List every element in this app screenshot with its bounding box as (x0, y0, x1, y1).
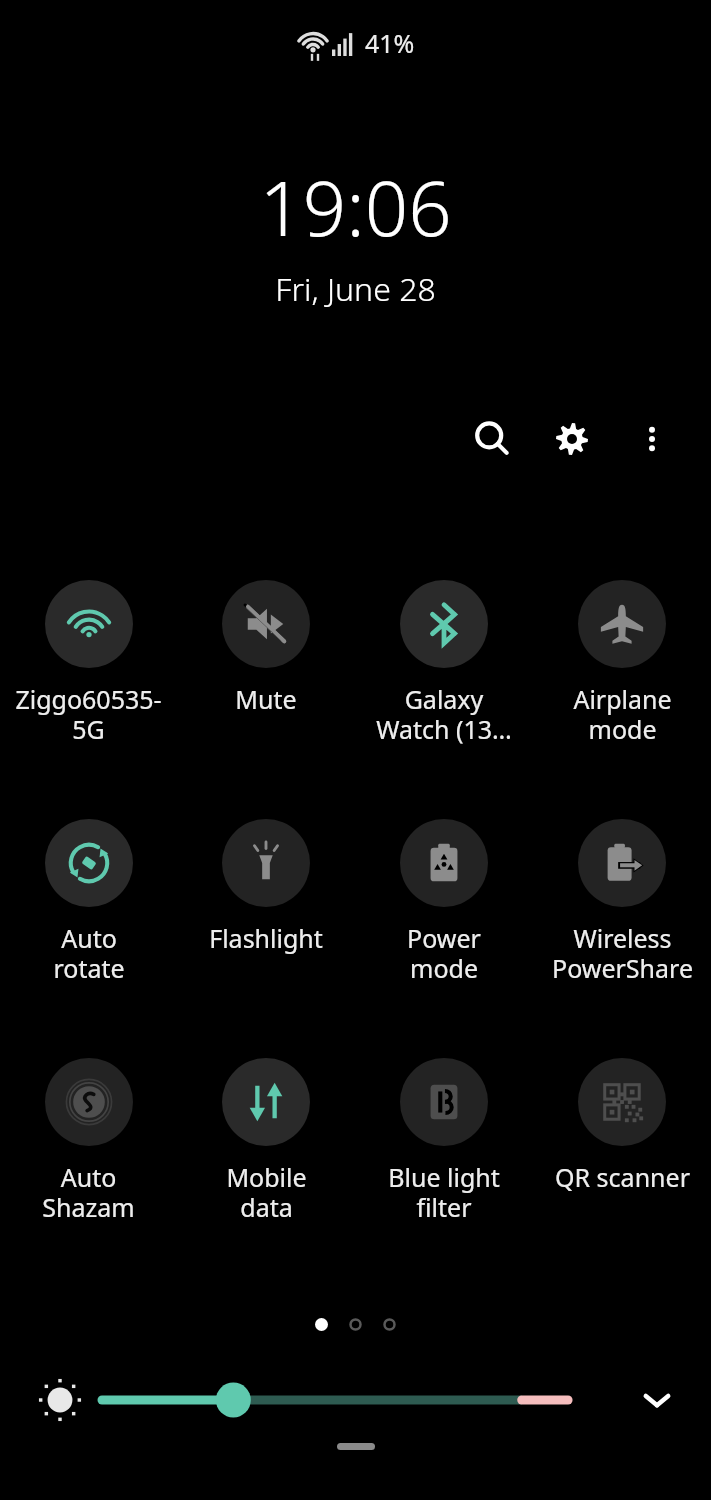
button[interactable]: Brightness slider (102, 1371, 617, 1429)
button[interactable]: Mobile data (177, 1058, 355, 1225)
staticText: Flashlight (209, 921, 323, 955)
staticText: Blue light filter (388, 1160, 500, 1225)
staticText: 41% (365, 26, 415, 60)
staticText: Auto rotate (53, 921, 125, 986)
staticText: Wireless PowerShare (552, 921, 693, 986)
button[interactable]: Auto rotate (0, 819, 177, 986)
button[interactable]: Mute (177, 580, 355, 716)
button[interactable]: Expand (625, 1368, 689, 1432)
button[interactable]: Settings (543, 410, 601, 468)
staticText: Power mode (407, 921, 481, 986)
button[interactable]: Wireless PowerShare (533, 819, 711, 986)
button[interactable]: Brightness (32, 1372, 88, 1428)
button[interactable]: Flashlight (177, 819, 355, 955)
staticText: 19:06 (259, 155, 452, 259)
staticText: Airplane mode (573, 682, 672, 747)
staticText: Mute (235, 682, 297, 716)
button[interactable]: Airplane mode (533, 580, 711, 747)
button[interactable]: Blue light filter (355, 1058, 533, 1225)
button[interactable]: Search (463, 410, 521, 468)
button[interactable]: Galaxy Watch (13… (355, 580, 533, 747)
button[interactable]: Power mode (355, 819, 533, 986)
button[interactable]: More options (623, 410, 681, 468)
button[interactable]: Auto Shazam (0, 1058, 177, 1225)
button[interactable]: Ziggo60535- 5G (0, 580, 177, 747)
staticText: QR scanner (555, 1160, 690, 1194)
button[interactable]: QR scanner (533, 1058, 711, 1194)
staticText: Ziggo60535- 5G (15, 682, 162, 747)
staticText: Auto Shazam (42, 1160, 135, 1225)
staticText: Galaxy Watch (13… (376, 682, 512, 747)
staticText: Fri, June 28 (275, 267, 436, 311)
staticText: Mobile data (226, 1160, 307, 1225)
